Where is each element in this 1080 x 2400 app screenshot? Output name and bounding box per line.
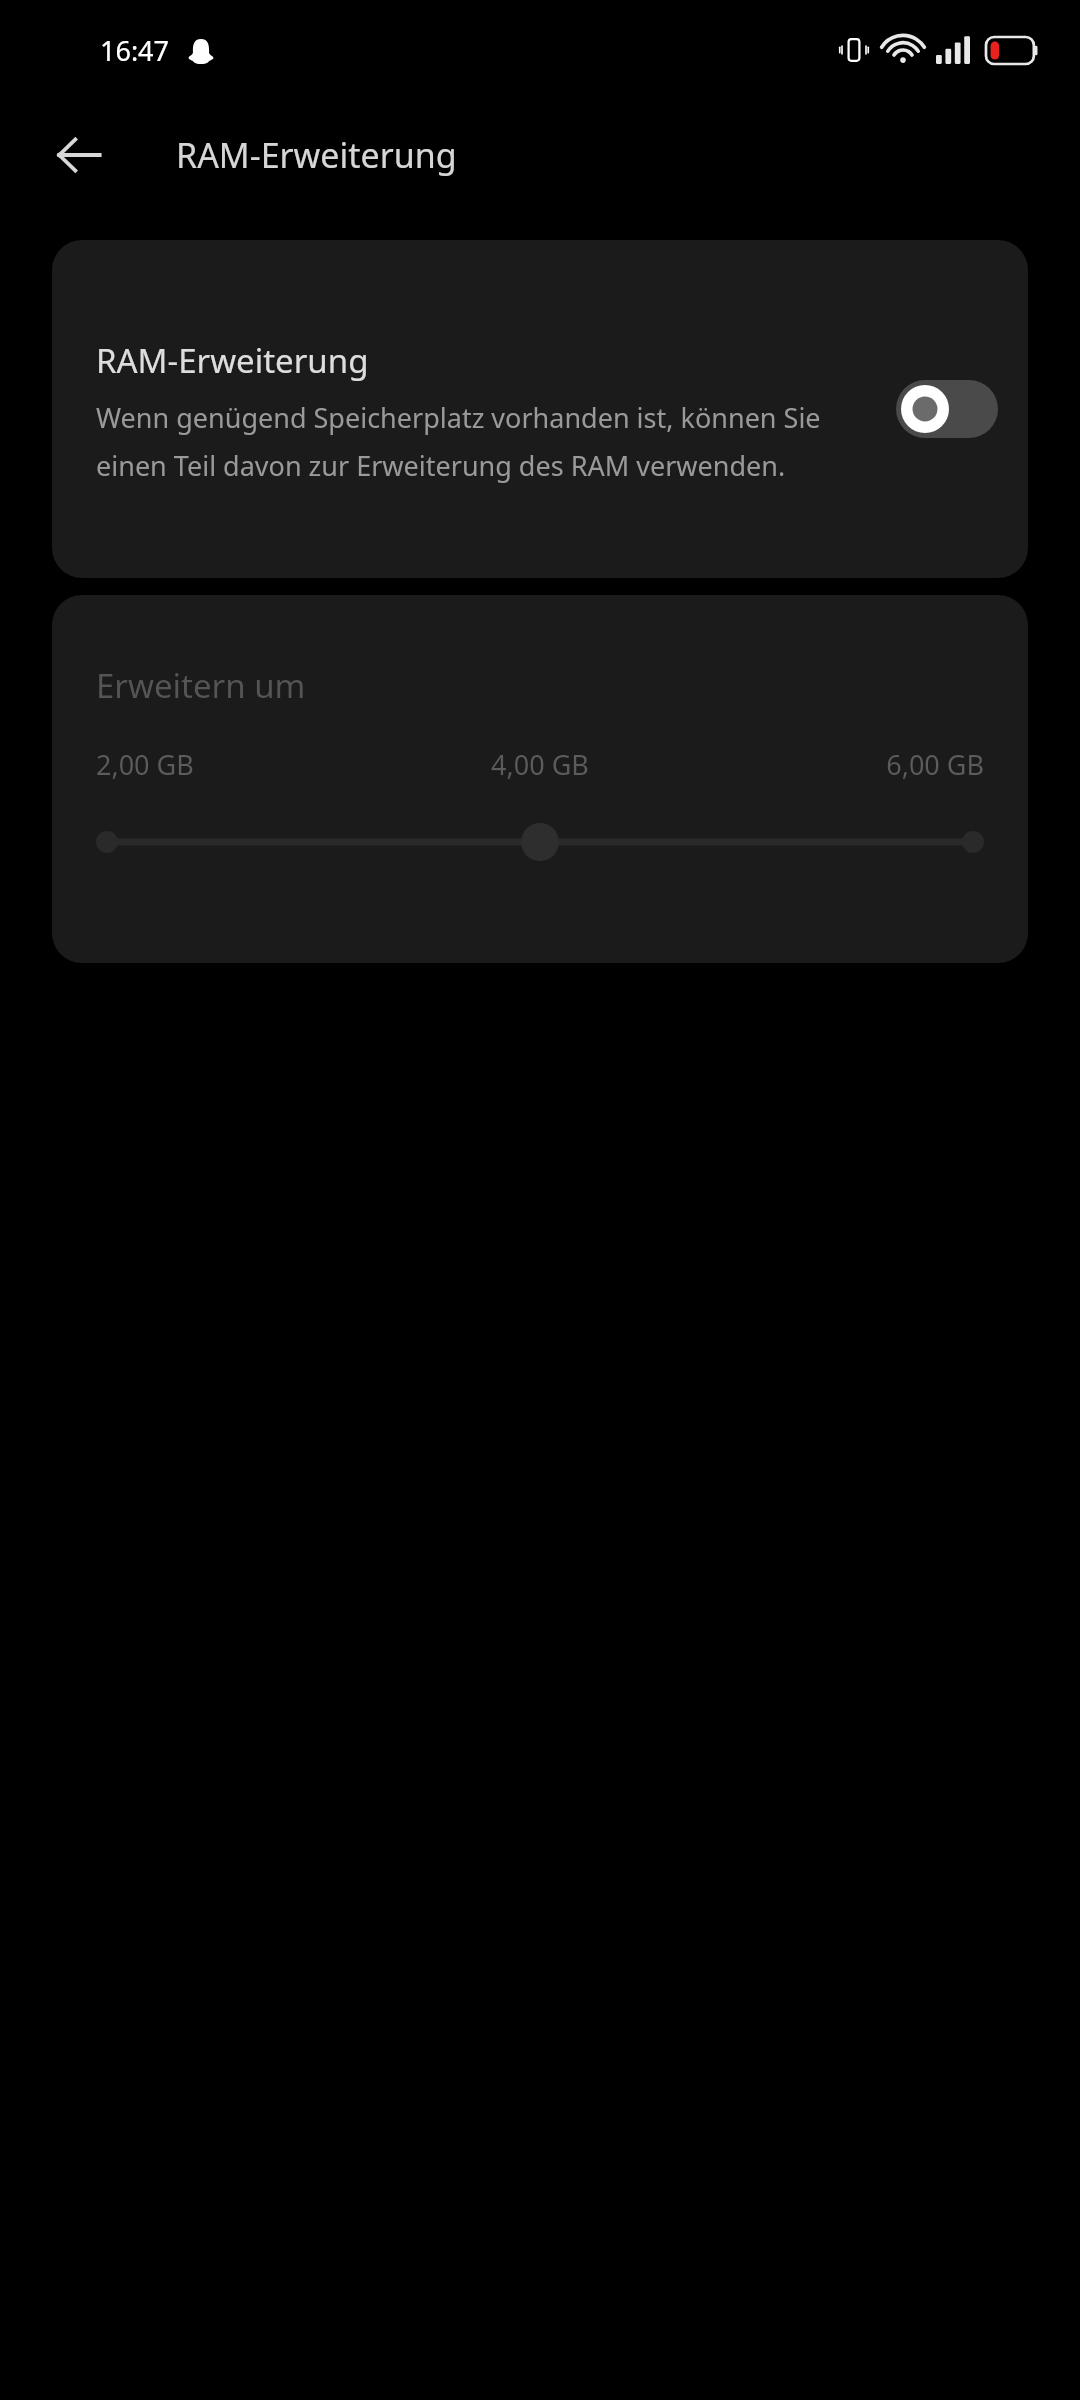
button[interactable]: RAM-Erweiterungsgröße xyxy=(96,815,984,869)
staticText: 16:47 xyxy=(100,32,170,69)
staticText: Erweitern um xyxy=(96,663,306,708)
staticText: 6,00 GB xyxy=(688,746,984,783)
staticText: 4,00 GB xyxy=(392,746,688,783)
staticText: 2,00 GB xyxy=(96,746,392,783)
staticText: RAM-Erweiterung xyxy=(176,132,457,178)
staticText: Wenn genügend Speicherplatz vorhanden is… xyxy=(96,399,876,484)
button[interactable]: RAM-Erweiterung xyxy=(52,240,1028,578)
button[interactable]: RAM-Erweiterung umschalten xyxy=(896,380,998,438)
button[interactable]: Zurück xyxy=(46,122,112,188)
staticText: RAM-Erweiterung xyxy=(96,338,369,383)
